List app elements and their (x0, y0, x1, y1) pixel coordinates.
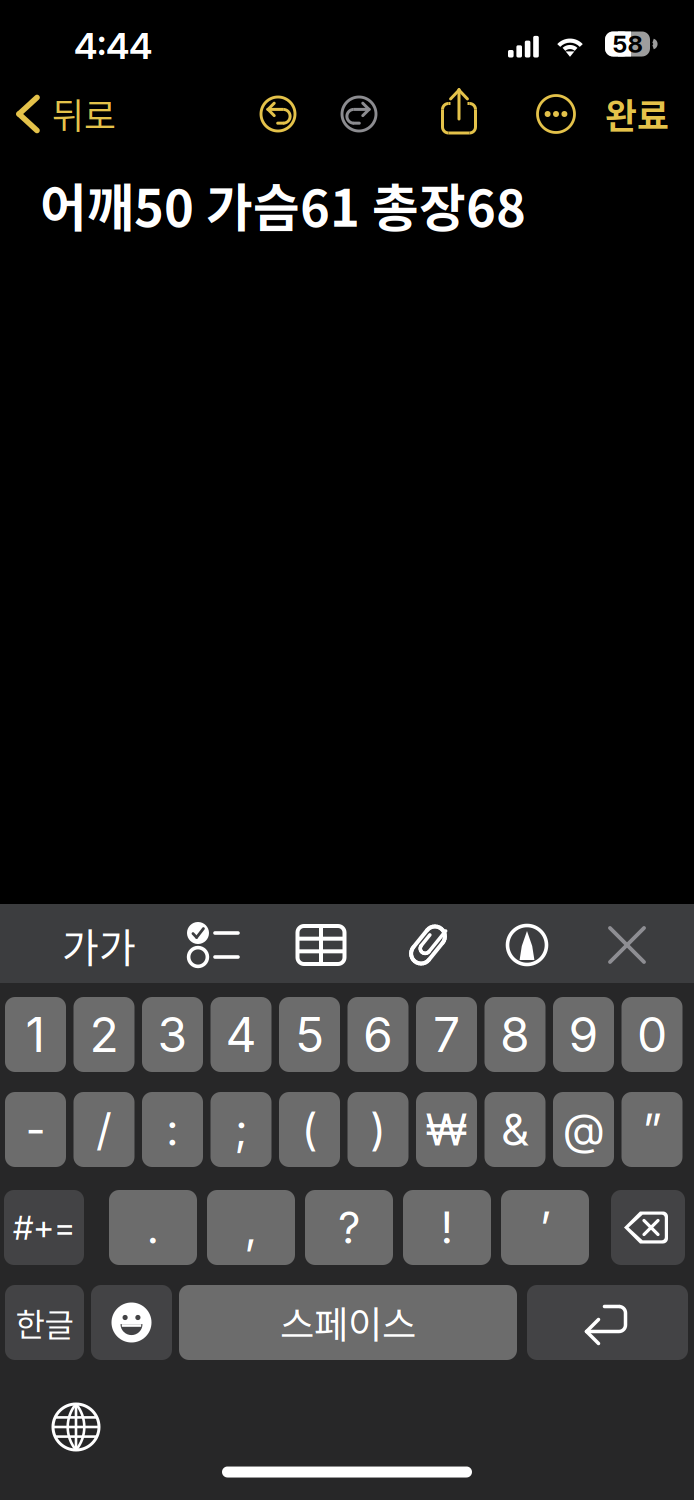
staticText: 8 (500, 1005, 530, 1064)
staticText: 7 (433, 1005, 460, 1064)
button[interactable]: ; (0, 983, 694, 1500)
staticText: 가가 (62, 916, 136, 974)
button[interactable]: 한글 (0, 983, 694, 1500)
staticText: ’ (539, 1201, 550, 1254)
button[interactable]: . (0, 983, 694, 1500)
button[interactable]: #+= (0, 983, 694, 1500)
staticText: ; (234, 1103, 247, 1156)
button[interactable]: 가가 (0, 904, 694, 983)
button[interactable]: & (0, 983, 694, 1500)
staticText: ( (301, 1103, 317, 1156)
button[interactable]: Markup (0, 904, 694, 983)
staticText: 9 (568, 1005, 598, 1064)
staticText: ! (440, 1201, 453, 1254)
button[interactable]: 1 (0, 983, 694, 1500)
button[interactable]: ) (0, 983, 694, 1500)
button[interactable]: 6 (0, 983, 694, 1500)
button[interactable]: - (0, 983, 694, 1500)
button[interactable]: : (0, 983, 694, 1500)
staticText: 한글 (15, 1299, 73, 1346)
button[interactable]: Checklist (0, 904, 694, 983)
button[interactable]: ’ (0, 983, 694, 1500)
button[interactable]: ” (0, 983, 694, 1500)
button[interactable]: ( (0, 983, 694, 1500)
staticText: 어깨50 가슴61 총장68 (40, 168, 526, 241)
button[interactable]: Close (0, 904, 694, 983)
button[interactable]: Emoji (0, 983, 694, 1500)
staticText: @ (562, 1103, 604, 1156)
button[interactable]: ₩ (0, 983, 694, 1500)
button[interactable]: 4 (0, 983, 694, 1500)
staticText: 4:44 (74, 24, 152, 68)
button[interactable]: / (0, 983, 694, 1500)
button[interactable]: 스페이스 (0, 983, 694, 1500)
button[interactable]: Undo (256, 92, 300, 136)
staticText: ) (370, 1103, 386, 1156)
staticText: ” (642, 1103, 661, 1156)
staticText: . (146, 1201, 159, 1254)
button[interactable]: 완료 (582, 83, 692, 145)
staticText: 0 (637, 1005, 667, 1064)
staticText: 뒤로 (52, 89, 116, 139)
staticText: 스페이스 (280, 1295, 416, 1350)
button[interactable]: More (528, 86, 584, 142)
button[interactable]: , (0, 983, 694, 1500)
staticText: 5 (295, 1005, 324, 1064)
button[interactable]: 5 (0, 983, 694, 1500)
staticText: 4 (225, 1005, 256, 1064)
staticText: / (96, 1103, 112, 1156)
staticText: - (25, 1103, 45, 1156)
staticText: : (166, 1103, 179, 1156)
staticText: 1 (25, 1005, 45, 1064)
button[interactable]: 7 (0, 983, 694, 1500)
staticText: 완료 (605, 89, 669, 139)
button[interactable]: @ (0, 983, 694, 1500)
button[interactable]: Attach (0, 904, 694, 983)
button[interactable]: Table (0, 904, 694, 983)
button[interactable]: Delete (0, 983, 694, 1500)
staticText: , (244, 1201, 257, 1254)
staticText: & (501, 1103, 529, 1156)
button[interactable]: ? (0, 983, 694, 1500)
button[interactable]: 8 (0, 983, 694, 1500)
staticText: ? (338, 1201, 360, 1254)
button[interactable]: Redo (337, 92, 381, 136)
button[interactable]: 뒤로 (14, 83, 174, 145)
button[interactable]: 0 (0, 983, 694, 1500)
button[interactable]: ! (0, 983, 694, 1500)
button[interactable]: 2 (0, 983, 694, 1500)
staticText: 58 (612, 29, 642, 58)
button[interactable]: 9 (0, 983, 694, 1500)
staticText: 2 (89, 1005, 118, 1064)
staticText: ₩ (425, 1103, 467, 1156)
button[interactable]: 3 (0, 983, 694, 1500)
staticText: 3 (157, 1005, 187, 1064)
staticText: #+= (13, 1207, 75, 1248)
button[interactable]: Next keyboard (0, 983, 694, 1500)
button[interactable]: Share (429, 68, 489, 138)
button[interactable]: Return (0, 983, 694, 1500)
staticText: 6 (363, 1005, 393, 1064)
